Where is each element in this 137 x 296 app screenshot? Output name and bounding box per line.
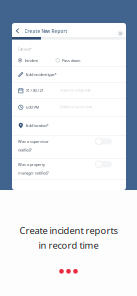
staticText: Add location* xyxy=(25,123,48,128)
button[interactable]: Add location* xyxy=(12,116,126,135)
button[interactable]: Add incident type* xyxy=(12,66,126,82)
button[interactable]: 01 / 30 / 21 xyxy=(12,82,126,98)
staticText: Was a property xyxy=(18,162,45,167)
staticText: Incident xyxy=(24,58,37,63)
staticText: Pass down xyxy=(62,58,80,63)
button[interactable]: Close xyxy=(116,29,125,38)
button[interactable]: Pass down xyxy=(55,58,80,63)
staticText: Defaults to today's date xyxy=(59,89,91,92)
staticText: Was a supervisor xyxy=(18,139,49,144)
staticText: Defaults to current time xyxy=(59,105,92,109)
staticText: Category* xyxy=(18,48,31,51)
button[interactable]: Incident xyxy=(18,58,37,63)
staticText: in record time xyxy=(38,239,98,251)
button[interactable]: Was a supervisor xyxy=(12,135,126,158)
button[interactable]: 6:00 PM xyxy=(12,98,126,116)
staticText: manager notified? xyxy=(18,170,49,176)
staticText: 6:00 PM xyxy=(25,104,39,110)
staticText: 01 / 30 / 21 xyxy=(25,88,43,93)
staticText: Create incident reports xyxy=(19,224,117,237)
staticText: Add incident type* xyxy=(25,72,56,77)
button[interactable]: Back xyxy=(13,26,21,36)
staticText: notified? xyxy=(18,147,32,153)
staticText: Create New Report xyxy=(24,28,67,34)
button[interactable]: Was a property xyxy=(12,158,126,179)
